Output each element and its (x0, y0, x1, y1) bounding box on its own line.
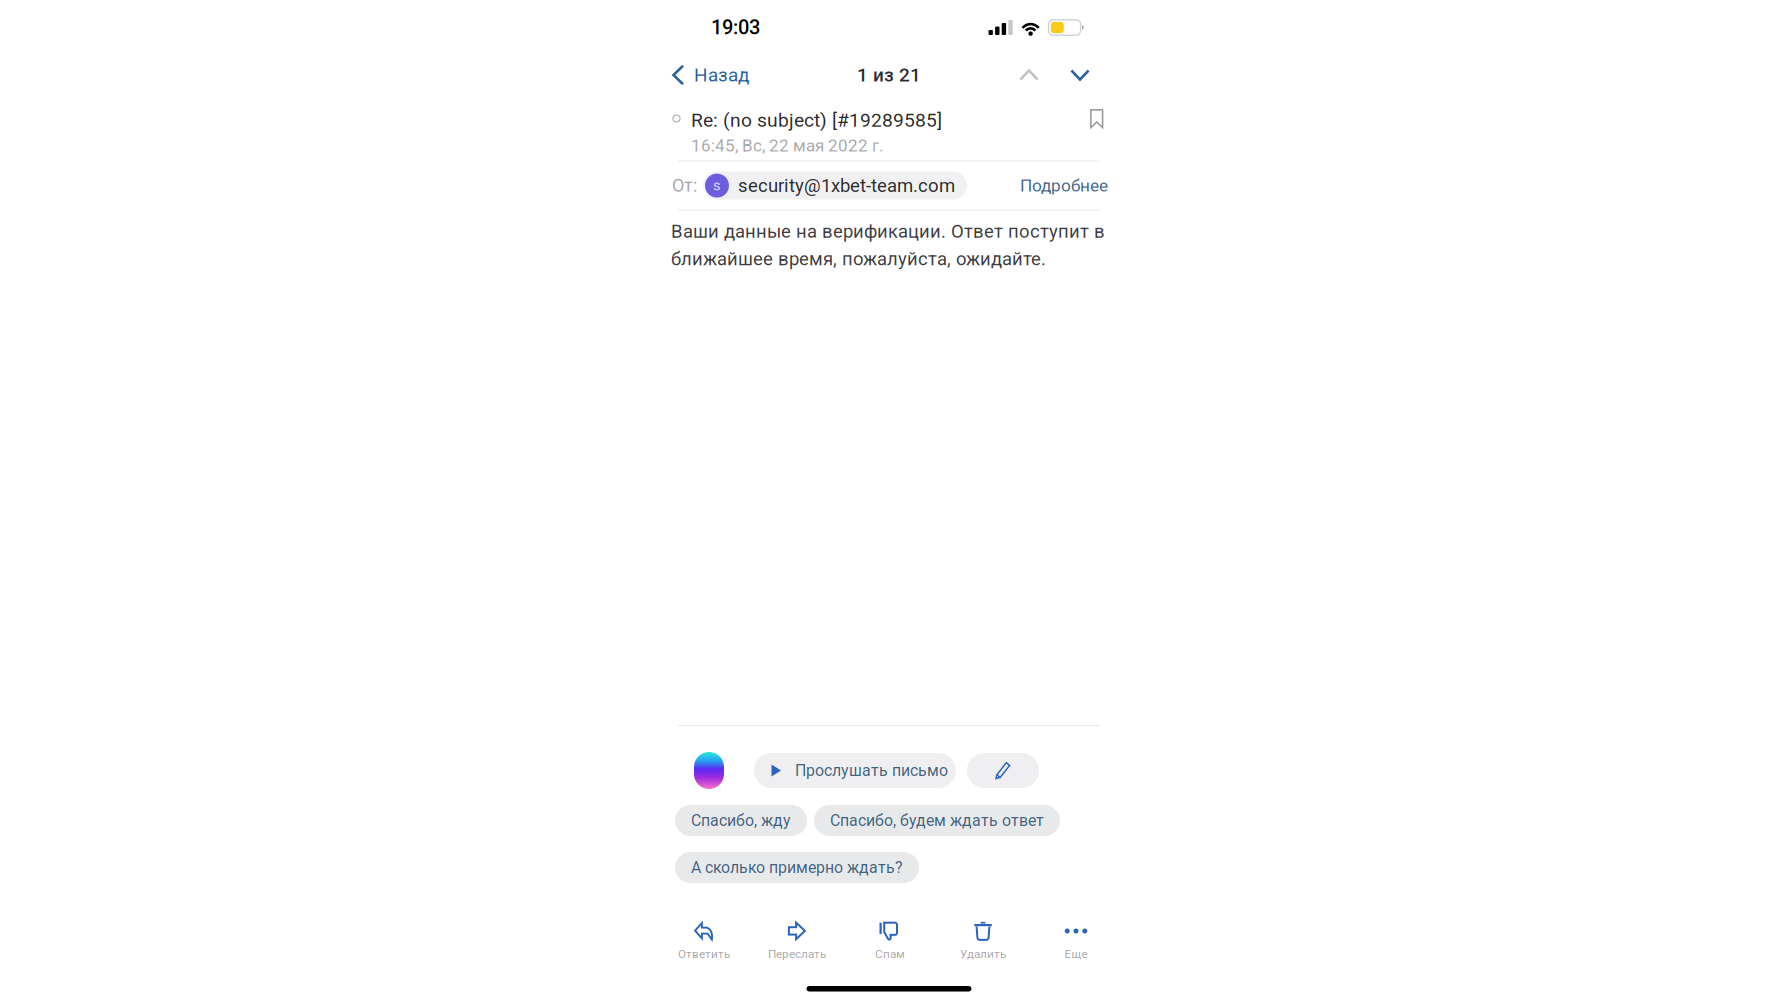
button[interactable]: Еще (1032, 920, 1120, 966)
staticText: Ваши данные на верификации. Ответ поступ… (671, 221, 1105, 242)
staticText: А сколько примерно ждать? (691, 858, 903, 877)
button[interactable]: Следующее письмо (1060, 55, 1100, 95)
staticText: Ответить (678, 947, 730, 961)
staticText: Подробнее (1020, 175, 1108, 196)
staticText: Спасибо, жду (691, 811, 791, 830)
staticText: Еще (1064, 947, 1087, 961)
button[interactable]: Удалить (939, 920, 1027, 966)
button[interactable]: Ответить (660, 920, 748, 966)
staticText: ближайшее время, пожалуйста, ожидайте. (671, 248, 1046, 270)
button[interactable]: Спасибо, будем ждать ответ (814, 805, 1060, 836)
button[interactable]: Прослушать письмо (754, 753, 956, 788)
button[interactable]: Спасибо, жду (675, 805, 807, 836)
staticText: Переслать (768, 947, 826, 961)
button[interactable]: Написать ответ (967, 753, 1039, 788)
button[interactable]: s (703, 172, 967, 200)
staticText: Спасибо, будем ждать ответ (830, 811, 1044, 830)
staticText: Прослушать письмо (795, 761, 948, 780)
button[interactable]: Назад (668, 55, 753, 95)
staticText: Re: (no subject) [#19289585] (691, 109, 942, 132)
button[interactable]: А сколько примерно ждать? (675, 852, 919, 883)
button[interactable]: Подробнее (1020, 169, 1108, 202)
staticText: От: (672, 175, 697, 196)
staticText: Спам (875, 947, 905, 961)
staticText: 16:45, Вс, 22 мая 2022 г. (691, 136, 884, 156)
staticText: Удалить (960, 947, 1006, 961)
staticText: 19:03 (711, 16, 760, 39)
staticText: security@1xbet-team.com (738, 175, 955, 196)
staticText: Назад (694, 64, 749, 86)
staticText: 1 из 21 (857, 64, 921, 86)
staticText: s (713, 177, 721, 194)
button[interactable]: В закладки (1090, 109, 1104, 129)
button[interactable]: Переслать (753, 920, 841, 966)
button[interactable]: Спам (846, 920, 934, 966)
button[interactable]: Предыдущее письмо (1009, 55, 1049, 95)
